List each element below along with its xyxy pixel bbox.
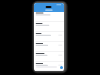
staticText: Where is item <box>36 53 50 56</box>
button[interactable]: Can I order <box>34 32 64 42</box>
button[interactable]: Contact Help? <box>34 12 64 22</box>
staticText: How do I pay <box>36 23 49 26</box>
button[interactable]: Where is item <box>34 52 64 62</box>
staticText: Contact Help? <box>36 12 50 15</box>
button[interactable]: How do I pay <box>34 22 64 32</box>
staticText: Can I order <box>36 33 48 36</box>
button[interactable]: Send <box>60 66 63 69</box>
button[interactable]: What is plan <box>34 42 64 52</box>
button[interactable]: Why do I need <box>34 62 64 71</box>
staticText: Why do I need <box>36 63 51 66</box>
staticText: What is plan <box>36 43 49 46</box>
